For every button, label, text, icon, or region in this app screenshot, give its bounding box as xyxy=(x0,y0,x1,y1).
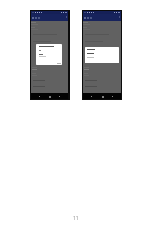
button[interactable]: Back xyxy=(38,95,41,98)
button[interactable]: Recent apps xyxy=(111,95,114,98)
button[interactable]: Recent apps xyxy=(58,95,61,98)
staticText: 11 xyxy=(73,215,79,222)
button[interactable]: Up xyxy=(84,17,92,19)
button[interactable]: More options xyxy=(65,16,67,18)
button[interactable] xyxy=(83,69,121,72)
button[interactable] xyxy=(36,44,62,65)
button[interactable]: Home xyxy=(48,95,51,98)
button[interactable] xyxy=(31,22,68,26)
button[interactable]: Back xyxy=(90,95,93,98)
button[interactable] xyxy=(87,57,119,58)
button[interactable] xyxy=(87,53,119,54)
button[interactable]: Up xyxy=(32,17,40,19)
button[interactable] xyxy=(87,49,119,50)
button[interactable]: More options xyxy=(118,16,120,18)
button[interactable] xyxy=(31,67,68,70)
button[interactable] xyxy=(31,69,68,72)
button[interactable] xyxy=(83,67,121,70)
button[interactable]: Home xyxy=(101,95,104,98)
button[interactable] xyxy=(83,22,121,26)
